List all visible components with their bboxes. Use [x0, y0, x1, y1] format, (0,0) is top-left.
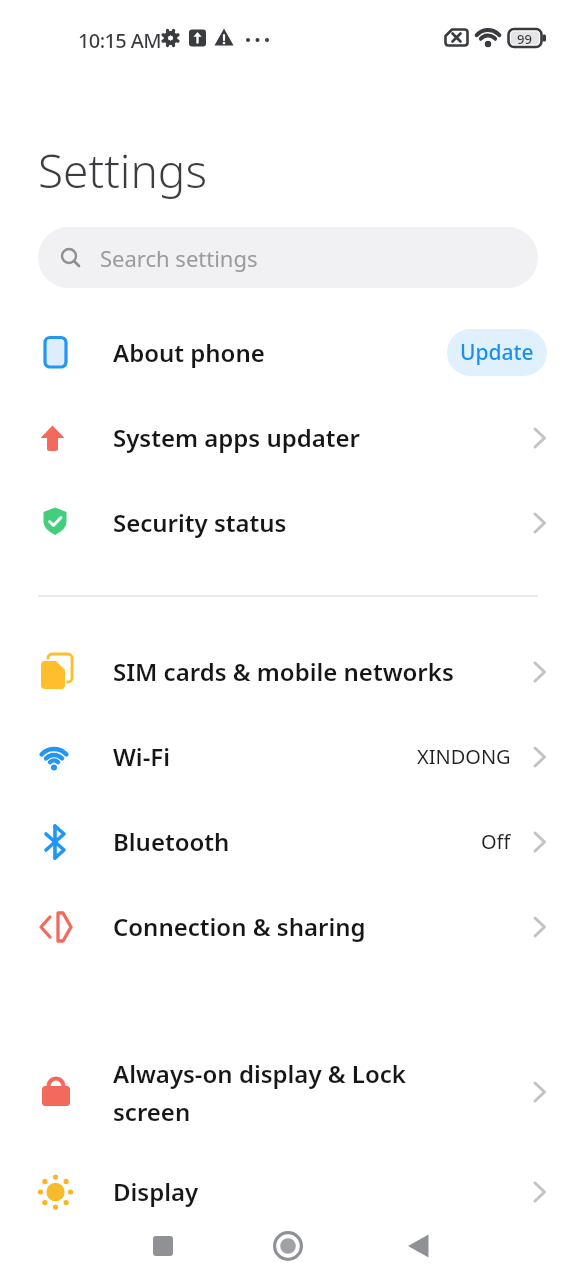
button[interactable]: About phone — [0, 310, 576, 395]
staticText: Off — [481, 828, 511, 855]
button[interactable] — [139, 1222, 187, 1270]
button[interactable] — [264, 1222, 312, 1270]
staticText: Update — [460, 338, 534, 367]
button[interactable] — [394, 1222, 442, 1270]
button[interactable]: System apps updater — [0, 395, 576, 480]
staticText: Wi-Fi — [113, 740, 171, 773]
staticText: 10:15 AM — [78, 27, 162, 54]
button[interactable]: Always-on display & Lock — [0, 1037, 576, 1147]
button[interactable]: SIM cards & mobile networks — [0, 629, 576, 714]
staticText: System apps updater — [113, 421, 361, 454]
staticText: Connection & sharing — [113, 910, 366, 943]
button[interactable]: Update — [447, 329, 547, 376]
staticText: Search settings — [100, 243, 258, 273]
button[interactable]: Connection & sharing — [0, 884, 576, 969]
staticText: Settings — [38, 139, 207, 202]
staticText: SIM cards & mobile networks — [113, 655, 454, 688]
staticText: Security status — [113, 506, 287, 539]
button[interactable]: Search settings — [38, 227, 538, 288]
staticText: Always-on display & Lock — [113, 1057, 406, 1090]
button[interactable]: Wi-Fi — [0, 714, 576, 799]
staticText: About phone — [113, 336, 265, 369]
staticText: screen — [113, 1095, 191, 1128]
staticText: Bluetooth — [113, 825, 230, 858]
button[interactable]: Display — [0, 1149, 576, 1234]
staticText: 99 — [517, 30, 532, 48]
button[interactable]: Bluetooth — [0, 799, 576, 884]
staticText: Display — [113, 1175, 199, 1208]
button[interactable]: Security status — [0, 480, 576, 565]
staticText: XINDONG — [417, 743, 511, 770]
